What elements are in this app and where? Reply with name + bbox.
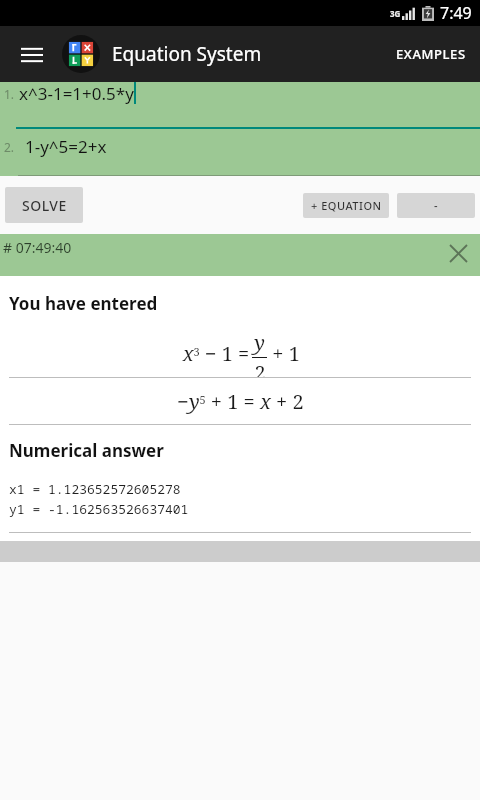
- staticText: # 07:49:40: [3, 238, 72, 257]
- staticText: y: [254, 329, 265, 356]
- staticText: + 1: [267, 340, 300, 367]
- button[interactable]: -: [397, 193, 475, 218]
- staticText: −y5 + 1 = x + 2: [177, 388, 304, 415]
- button[interactable]: EXAMPLES: [382, 33, 480, 75]
- staticText: Numerical answer: [9, 439, 164, 462]
- staticText: SOLVE: [22, 196, 67, 215]
- button[interactable]: 1.: [0, 82, 480, 129]
- staticText: x3 − 1 =: [180, 340, 252, 367]
- staticText: 1-y^5=2+x: [25, 135, 107, 158]
- staticText: x^3-1=1+0.5*y: [19, 82, 134, 105]
- staticText: You have entered: [9, 292, 158, 315]
- staticText: 3G: [390, 8, 401, 19]
- button[interactable]: SOLVE: [5, 187, 83, 223]
- staticText: + EQUATION: [311, 198, 382, 213]
- button[interactable]: + EQUATION: [303, 193, 389, 218]
- button[interactable]: Close result: [442, 237, 474, 269]
- staticText: 2.: [4, 139, 15, 155]
- staticText: y1 = -1.162563526637401: [9, 500, 189, 518]
- staticText: 1.: [4, 86, 15, 102]
- staticText: Equation System: [112, 41, 262, 67]
- staticText: x1 = 1.123652572605278: [9, 480, 181, 498]
- staticText: -: [434, 198, 439, 213]
- staticText: 2: [254, 359, 266, 377]
- staticText: 7:49: [440, 2, 472, 24]
- button[interactable]: 2.: [0, 135, 480, 176]
- button[interactable]: Open navigation drawer: [12, 34, 52, 74]
- staticText: EXAMPLES: [396, 45, 466, 63]
